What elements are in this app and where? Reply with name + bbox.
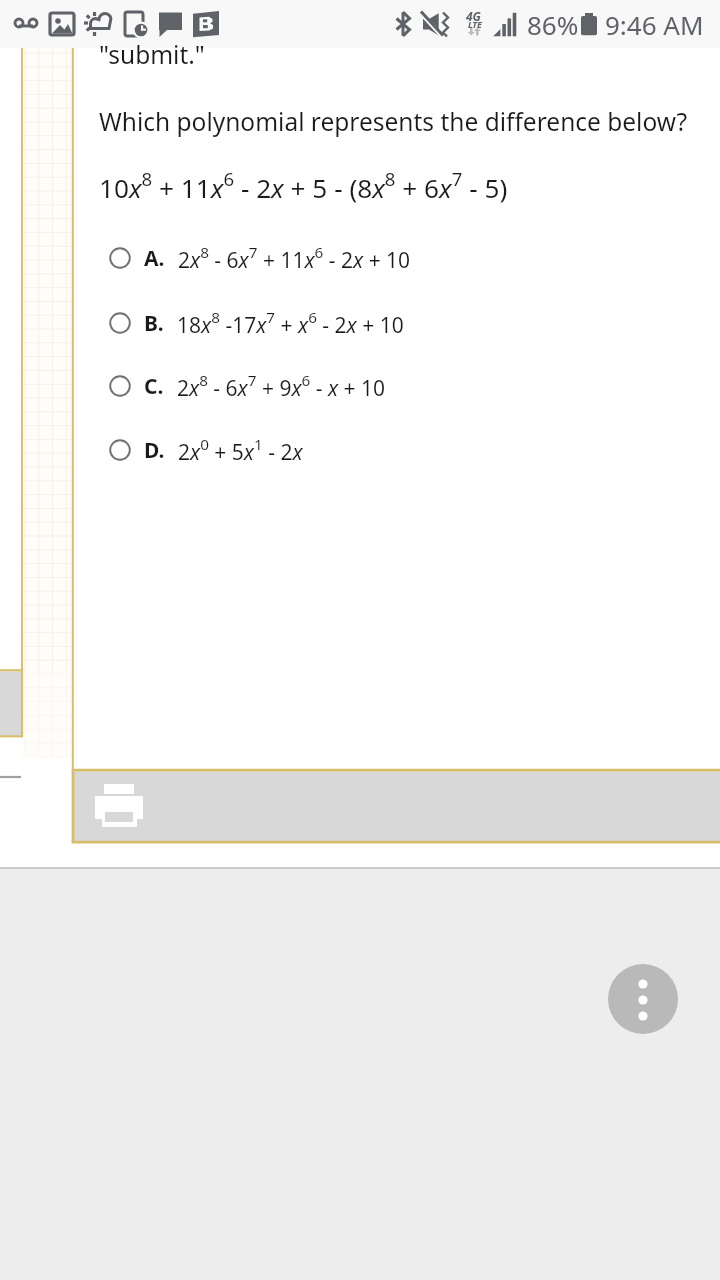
staticText: D. (144, 436, 165, 465)
staticText: 10x8 + 11x6 - 2x + 5 - (8x8 + 6x7 - 5) (99, 166, 508, 205)
staticText: LTE (468, 18, 482, 30)
staticText: A. (144, 244, 165, 273)
button[interactable]: B. (109, 298, 439, 348)
button[interactable]: More options (608, 964, 678, 1034)
button[interactable]: A. (109, 233, 439, 283)
staticText: 2x8 - 6x7 + 11x6 - 2x + 10 (178, 242, 411, 274)
staticText: C. (144, 372, 164, 401)
staticText: 86% (527, 7, 579, 42)
staticText: 9:46 AM (605, 7, 704, 42)
button[interactable]: D. (109, 425, 439, 475)
staticText: 2x8 - 6x7 + 9x6 - x + 10 (177, 370, 386, 402)
staticText: 4G (466, 8, 481, 24)
button[interactable]: Print (73, 772, 720, 841)
staticText: 18x8 -17x7 + x6 - 2x + 10 (177, 307, 404, 339)
staticText: "submit." (99, 38, 205, 71)
staticText: 2x0 + 5x1 - 2x (178, 434, 303, 466)
staticText: Which polynomial represents the differen… (99, 105, 688, 138)
button[interactable]: C. (109, 361, 439, 411)
staticText: B. (144, 309, 164, 338)
